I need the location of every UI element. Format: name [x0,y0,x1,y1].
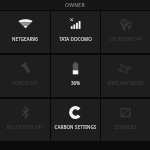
staticText: OWNER [65,2,85,9]
button[interactable]: Torch off [0,55,50,97]
staticText: AIRPLANE MODE [102,80,149,86]
button[interactable]: Mobile network TATA DOCOMO [51,11,100,53]
staticText: 36% [52,80,99,86]
button[interactable]: Wi-Fi NETGEAR96 [0,11,50,53]
staticText: TATA DOCOMO [52,36,99,42]
staticText: NETGEAR96 [1,36,49,42]
button[interactable]: Rotation disabled [101,99,150,141]
staticText: LOCATION OFF [102,36,149,42]
button[interactable]: Airplane mode [101,55,150,97]
button[interactable]: Location off [101,11,150,53]
staticText: DISABLED [102,124,149,130]
staticText: BLUETOOTH OFF [1,124,49,130]
staticText: CARBON SETTINGS [52,124,99,130]
button[interactable]: OWNER [0,0,150,10]
button[interactable]: Battery 36 percent [51,55,100,97]
button[interactable]: Carbon settings [51,99,100,141]
staticText: TORCH OFF [1,80,49,86]
button[interactable]: Bluetooth off [0,99,50,141]
